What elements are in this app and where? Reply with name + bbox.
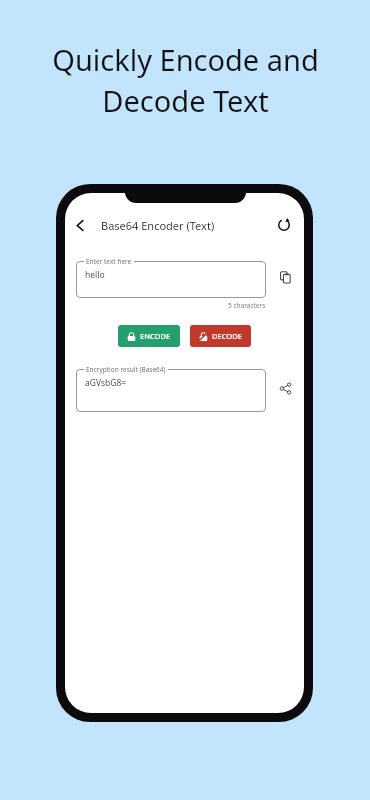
staticText: hello <box>85 269 105 281</box>
button[interactable]: Paste <box>272 264 298 290</box>
staticText: DECODE <box>212 331 242 341</box>
staticText: Quickly Encode and <box>52 40 319 79</box>
staticText: Base64 Encoder (Text) <box>101 218 215 233</box>
staticText: aGVsbG8= <box>85 377 127 389</box>
button[interactable]: ENCODE <box>118 325 180 347</box>
staticText: Encryption result (Base64) <box>86 365 166 374</box>
button[interactable]: aGVsbG8= <box>76 364 266 412</box>
button[interactable]: Refresh <box>268 210 300 240</box>
button[interactable]: hello <box>76 256 266 298</box>
staticText: Enter text here <box>86 257 132 266</box>
staticText: Decode Text <box>102 81 269 120</box>
staticText: ENCODE <box>140 331 171 341</box>
button[interactable]: Share <box>272 375 298 401</box>
button[interactable]: Back <box>65 210 95 240</box>
staticText: 5 characters <box>228 301 266 310</box>
button[interactable]: DECODE <box>190 325 251 347</box>
